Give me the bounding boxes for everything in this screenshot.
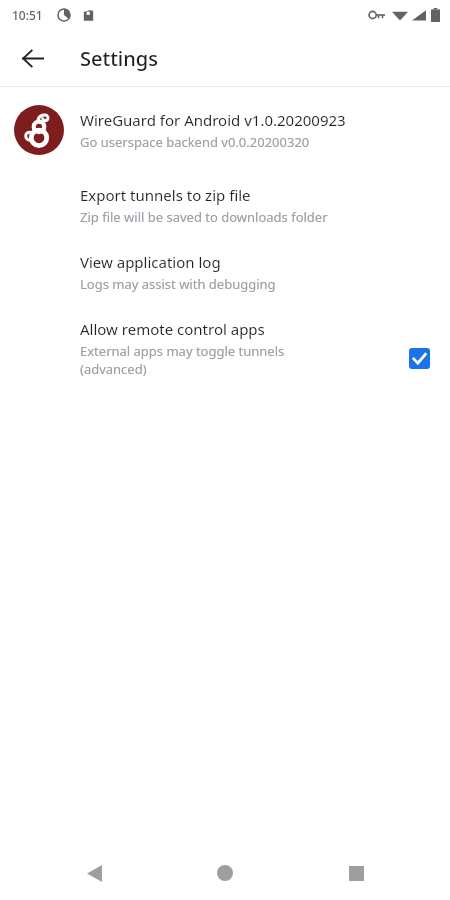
button[interactable]: Back xyxy=(70,849,118,897)
staticText: View application log xyxy=(80,252,221,272)
staticText: Go userspace backend v0.0.20200320 xyxy=(80,133,310,151)
staticText: WireGuard for Android v1.0.20200923 xyxy=(80,110,346,130)
staticText: 10:51 xyxy=(12,7,43,23)
staticText: External apps may toggle tunnels (advanc… xyxy=(80,342,285,378)
staticText: Logs may assist with debugging xyxy=(80,275,276,293)
staticText: Export tunnels to zip file xyxy=(80,185,251,205)
staticText: Allow remote control apps xyxy=(80,319,265,339)
button[interactable]: Export tunnels to zip file xyxy=(0,183,450,228)
button[interactable]: Home xyxy=(201,849,249,897)
button[interactable]: Back xyxy=(8,34,56,82)
button[interactable]: Allow remote control apps checkbox xyxy=(402,341,436,375)
button[interactable]: WireGuard for Android v1.0.20200923 xyxy=(0,101,450,161)
button[interactable]: View application log xyxy=(0,250,450,295)
button[interactable]: Recent apps xyxy=(332,849,380,897)
staticText: Settings xyxy=(80,45,158,72)
staticText: Zip file will be saved to downloads fold… xyxy=(80,208,328,226)
button[interactable]: Allow remote control apps xyxy=(0,319,450,378)
